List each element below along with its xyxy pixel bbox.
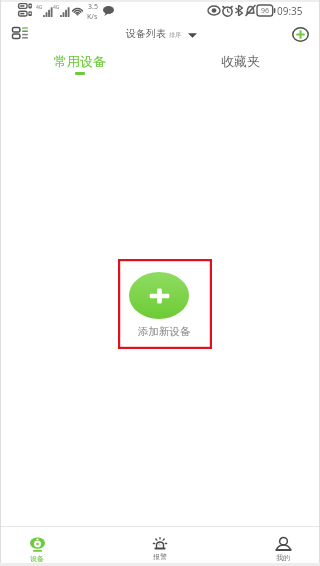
staticText: 收藏夹 [221,53,260,69]
staticText: 添加新设备 [138,325,191,338]
staticText: 报警 [153,552,167,561]
button[interactable]: Add device [288,22,312,46]
staticText: 设备列表 [126,27,166,40]
staticText: 我的 [276,553,290,562]
button[interactable]: 常用设备 [0,50,160,82]
staticText: 排序 [169,31,181,39]
staticText: 4G [36,4,43,11]
staticText: K/s [87,12,98,22]
staticText: 设备 [30,554,44,563]
staticText: 3.5 [88,2,98,12]
button[interactable]: 设备 [9,526,65,566]
button[interactable]: 我的 [255,526,311,566]
staticText: 4G [53,4,60,11]
staticText: 常用设备 [54,53,106,69]
staticText: 09:35 [277,4,303,18]
button[interactable]: 设备列表 [126,27,197,40]
button[interactable]: Device groups [6,19,34,47]
button[interactable]: 添加新设备 [118,259,212,349]
button[interactable]: 收藏夹 [160,50,320,82]
staticText: 96 [261,6,270,16]
button[interactable]: 报警 [132,526,188,566]
